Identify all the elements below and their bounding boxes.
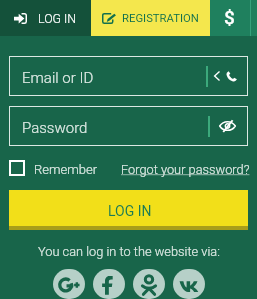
staticText: You can log in to the website via: (38, 244, 220, 259)
button[interactable]: Balance (210, 0, 257, 36)
staticText: Email or ID (22, 69, 94, 87)
staticText: Password (22, 119, 88, 137)
button[interactable]: Sign in with VKontakte (173, 269, 205, 299)
staticText: REGISTRATION (122, 12, 199, 25)
button[interactable]: REGISTRATION (91, 0, 210, 36)
staticText: LOG IN (108, 203, 152, 219)
button[interactable]: LOG IN (9, 190, 248, 230)
button[interactable]: Password (9, 106, 248, 146)
staticText: Remember (34, 162, 98, 177)
button[interactable]: Sign in with Facebook (93, 269, 125, 299)
button[interactable]: Email or ID (9, 56, 248, 96)
button[interactable]: Forgot your password? (121, 162, 250, 177)
button[interactable]: Remember (9, 160, 98, 176)
button[interactable]: Sign in with Google Plus (53, 269, 85, 299)
button[interactable]: Sign in with Odnoklassniki (133, 269, 165, 299)
staticText: $ (224, 6, 235, 28)
staticText: LOG IN (38, 11, 77, 26)
button[interactable]: LOG IN (0, 0, 91, 36)
